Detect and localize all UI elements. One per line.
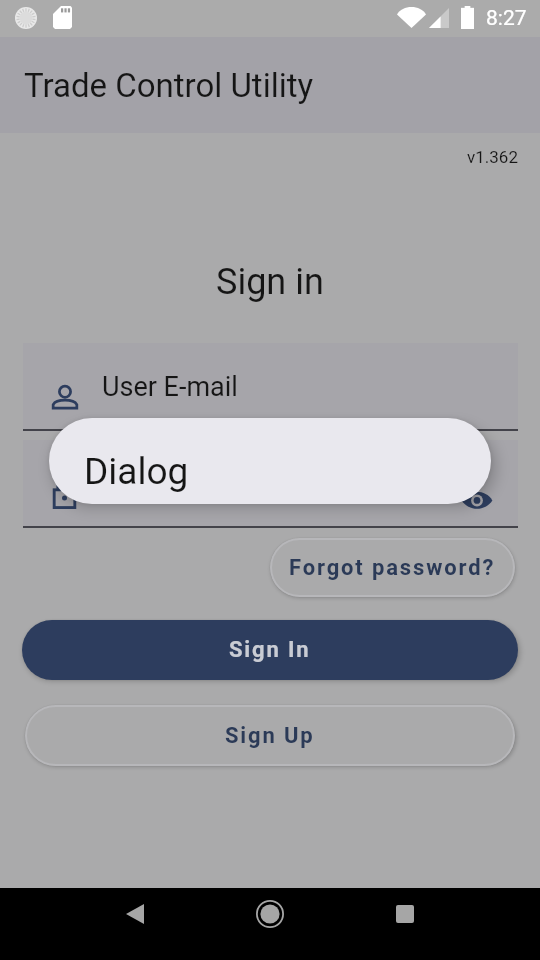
staticText: Dialog — [84, 450, 189, 493]
button[interactable]: Sign Up — [25, 705, 515, 766]
staticText: v1.362 — [467, 147, 518, 167]
button[interactable]: Back — [111, 890, 159, 938]
button[interactable]: Forgot password? — [270, 538, 515, 597]
staticText: Sign In — [229, 637, 311, 663]
button[interactable]: Toggle password visibility — [453, 477, 501, 523]
button[interactable]: Sign In — [22, 620, 518, 680]
staticText: Forgot password? — [289, 555, 496, 581]
staticText: 8:27 — [486, 6, 527, 31]
staticText: Trade Control Utility — [24, 66, 314, 105]
staticText: Sign Up — [225, 723, 315, 749]
button[interactable]: User E-mail — [23, 343, 518, 431]
button[interactable]: Home — [246, 890, 294, 938]
button[interactable]: Recent apps — [381, 890, 429, 938]
staticText: User E-mail — [102, 371, 238, 403]
staticText: Sign in — [216, 261, 324, 303]
button[interactable]: Toggle password visibility — [23, 440, 518, 528]
button[interactable]: Dialog — [49, 418, 491, 504]
